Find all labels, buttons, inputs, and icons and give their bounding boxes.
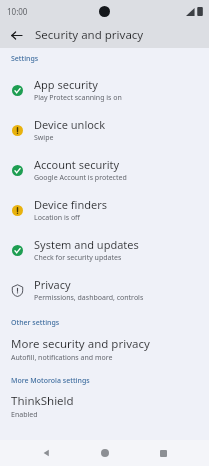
staticText: ThinkShield — [11, 393, 74, 409]
button[interactable]: Home — [92, 440, 118, 466]
staticText: Permissions, dashboard, controls — [34, 293, 144, 303]
staticText: Settings — [11, 54, 39, 64]
button[interactable]: Account security — [0, 150, 209, 190]
staticText: Play Protect scanning is on — [34, 93, 122, 103]
staticText: System and updates — [34, 237, 139, 252]
staticText: Swipe — [34, 133, 54, 143]
staticText: Google Account is protected — [34, 173, 127, 183]
button[interactable]: ThinkShield — [0, 390, 209, 425]
button[interactable]: Device unlock — [0, 110, 209, 150]
staticText: 10:00 — [7, 6, 28, 17]
staticText: Check for security updates — [34, 253, 122, 263]
staticText: Enabled — [11, 410, 38, 420]
button[interactable]: Back — [5, 24, 27, 46]
staticText: Other settings — [11, 318, 60, 328]
button[interactable]: Recent apps — [150, 440, 176, 466]
button[interactable]: System and updates — [0, 230, 209, 270]
staticText: Security and privacy — [35, 27, 144, 43]
staticText: More Motorola settings — [11, 376, 90, 386]
button[interactable]: App security — [0, 70, 209, 110]
button[interactable]: Device finders — [0, 190, 209, 230]
staticText: Device unlock — [34, 117, 106, 132]
staticText: Privacy — [34, 277, 71, 292]
button[interactable]: Back — [33, 440, 59, 466]
staticText: Autofill, notifications and more — [11, 353, 113, 363]
staticText: More security and privacy — [11, 336, 150, 352]
staticText: Device finders — [34, 197, 107, 212]
staticText: Account security — [34, 157, 120, 172]
button[interactable]: Privacy — [0, 270, 209, 310]
staticText: App security — [34, 77, 98, 92]
staticText: Location is off — [34, 213, 80, 223]
button[interactable]: More security and privacy — [0, 333, 209, 368]
